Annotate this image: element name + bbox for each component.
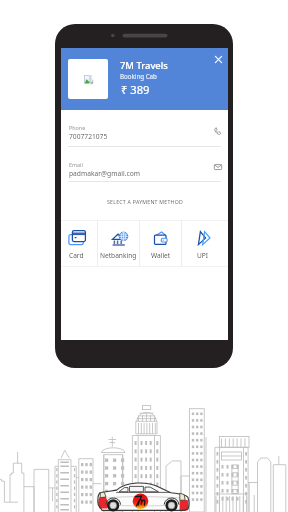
button[interactable]: Phone	[61, 110, 228, 146]
button[interactable]: Email	[211, 160, 224, 173]
staticText: UPI	[197, 251, 209, 260]
staticText: ₹ 389	[121, 82, 150, 97]
staticText: Phone	[69, 124, 86, 131]
button[interactable]: Card	[56, 220, 97, 267]
staticText: SELECT A PAYMENT METHOD	[107, 198, 183, 205]
staticText: 7007721075	[69, 132, 108, 141]
button[interactable]: Close	[210, 51, 226, 67]
staticText: Netbanking	[100, 251, 137, 260]
button[interactable]: Netbanking	[98, 220, 139, 267]
staticText: Wallet	[151, 251, 171, 260]
staticText: padmakar@gmail.com	[69, 169, 140, 178]
staticText: Email	[69, 161, 83, 168]
button[interactable]: UPI	[182, 220, 223, 267]
staticText: Card	[69, 251, 84, 260]
staticText: 7M Travels	[120, 59, 168, 72]
staticText: Booking Cab	[120, 72, 157, 80]
button[interactable]: Wallet	[140, 220, 181, 267]
button[interactable]: Call	[211, 124, 224, 137]
button[interactable]: Email	[61, 147, 228, 181]
